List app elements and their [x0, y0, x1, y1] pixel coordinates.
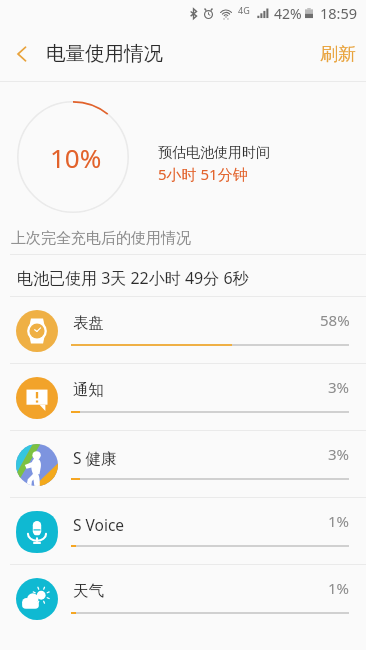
staticText: 3% [328, 444, 350, 464]
staticText: 58% [320, 310, 350, 330]
staticText: 42% [274, 4, 302, 23]
button[interactable]: S 健康 [0, 430, 366, 497]
button[interactable]: 刷新 [306, 26, 366, 83]
staticText: 1% [328, 578, 350, 598]
staticText: 刷新 [320, 43, 356, 66]
button[interactable]: S Voice [0, 497, 366, 564]
staticText: 上次完全充电后的使用情况 [11, 229, 191, 248]
button[interactable]: 通知 [0, 363, 366, 430]
staticText: S 健康 [73, 447, 117, 468]
staticText: 电量使用情况 [46, 41, 163, 66]
button[interactable]: Back [0, 26, 44, 81]
staticText: 天气 [73, 581, 104, 601]
staticText: S Voice [73, 514, 125, 535]
staticText: 预估电池使用时间 [158, 144, 270, 162]
staticText: 5小时 51分钟 [158, 164, 248, 184]
staticText: 4G [238, 4, 250, 16]
staticText: 18:59 [320, 3, 358, 23]
staticText: 电池已使用 3天 22小时 49分 6秒 [17, 267, 249, 289]
staticText: 3% [328, 377, 350, 397]
button[interactable]: 天气 [0, 564, 366, 631]
staticText: 1% [328, 511, 350, 531]
staticText: 通知 [73, 380, 104, 400]
staticText: 10% [50, 140, 102, 175]
button[interactable]: 表盘 [0, 296, 366, 363]
staticText: 表盘 [73, 313, 104, 333]
